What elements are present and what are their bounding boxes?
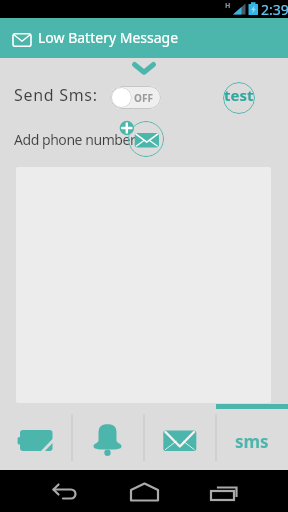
button[interactable]: OFF	[110, 86, 161, 109]
button[interactable]: sms	[216, 404, 288, 470]
button[interactable]	[0, 404, 72, 470]
button[interactable]	[72, 404, 144, 470]
button[interactable]	[128, 121, 164, 157]
button[interactable]	[108, 470, 180, 512]
staticText: test	[224, 85, 254, 105]
button[interactable]	[123, 58, 165, 80]
staticText: OFF	[134, 91, 153, 105]
button[interactable]	[144, 404, 216, 470]
staticText: Add phone number	[14, 130, 136, 149]
button[interactable]	[180, 470, 252, 512]
staticText: sms	[235, 430, 269, 453]
staticText: Send Sms:	[14, 84, 98, 106]
staticText: 2:39	[261, 0, 288, 18]
button[interactable]: test	[223, 82, 255, 114]
button[interactable]	[36, 470, 108, 512]
staticText: H	[225, 1, 231, 11]
staticText: Low Battery Message	[38, 28, 179, 47]
